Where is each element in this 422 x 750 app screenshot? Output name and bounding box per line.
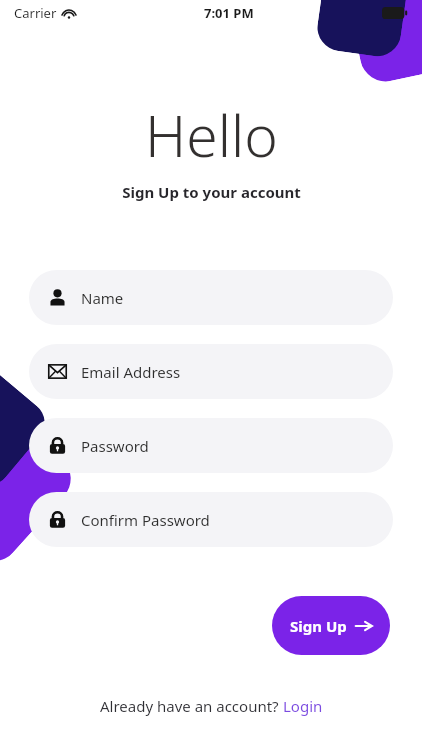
button[interactable]: Email Address [29, 344, 393, 399]
button[interactable]: Sign Up [272, 596, 390, 655]
staticText: Carrier [14, 4, 57, 22]
staticText: Hello [145, 96, 278, 174]
staticText: Email Address [81, 362, 181, 382]
other: Password [48, 436, 67, 455]
staticText: Sign Up to your account [122, 182, 301, 202]
button[interactable]: Confirm Password [29, 492, 393, 547]
staticText: Confirm Password [81, 510, 210, 530]
staticText: Already have an account? [100, 696, 283, 716]
button[interactable]: Login [283, 696, 323, 716]
other: Name [48, 288, 67, 307]
button[interactable]: Password [29, 418, 393, 473]
staticText: Password [81, 436, 149, 456]
staticText: 7:01 PM [204, 4, 254, 22]
button[interactable]: Name [29, 270, 393, 325]
staticText: Sign Up [290, 616, 347, 636]
other: Email Address [48, 362, 67, 381]
staticText: Name [81, 288, 124, 308]
staticText: Login [283, 696, 323, 716]
other: Confirm Password [48, 510, 67, 529]
